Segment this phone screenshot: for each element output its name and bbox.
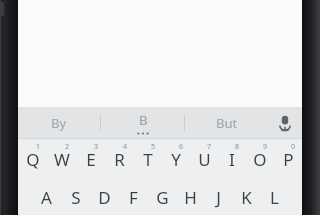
staticText: P: [283, 148, 294, 171]
button[interactable]: H: [176, 179, 204, 215]
button[interactable]: Voice input: [268, 107, 302, 139]
button[interactable]: R: [105, 139, 134, 179]
staticText: But: [216, 114, 238, 132]
button[interactable]: U: [190, 139, 218, 179]
button[interactable]: Q: [18, 139, 47, 179]
button[interactable]: B: [101, 107, 184, 139]
staticText: 8: [235, 142, 240, 152]
staticText: 9: [263, 142, 268, 152]
staticText: S: [71, 186, 81, 209]
staticText: 5: [151, 142, 156, 152]
button[interactable]: S: [61, 179, 90, 215]
staticText: I: [229, 148, 235, 171]
staticText: L: [270, 186, 279, 209]
staticText: 4: [123, 142, 128, 152]
staticText: E: [86, 148, 96, 171]
staticText: K: [241, 186, 252, 209]
button[interactable]: F: [119, 179, 148, 215]
staticText: 3: [94, 142, 99, 152]
button[interactable]: I: [218, 139, 246, 179]
staticText: O: [253, 148, 267, 171]
staticText: 0: [291, 142, 296, 152]
staticText: U: [198, 148, 211, 171]
staticText: H: [184, 186, 197, 209]
staticText: By: [51, 114, 67, 132]
button[interactable]: Y: [162, 139, 190, 179]
button[interactable]: J: [204, 179, 232, 215]
button[interactable]: E: [76, 139, 105, 179]
button[interactable]: W: [47, 139, 76, 179]
staticText: A: [41, 186, 52, 209]
staticText: F: [129, 186, 138, 209]
button[interactable]: But: [185, 107, 268, 139]
button[interactable]: K: [232, 179, 260, 215]
button[interactable]: D: [90, 179, 119, 215]
staticText: T: [143, 148, 153, 171]
staticText: G: [156, 186, 169, 209]
staticText: B: [139, 111, 148, 129]
staticText: J: [216, 186, 221, 209]
button[interactable]: O: [246, 139, 274, 179]
button[interactable]: A: [32, 179, 61, 215]
staticText: Q: [26, 148, 40, 171]
staticText: Y: [171, 148, 181, 171]
staticText: 6: [179, 142, 184, 152]
staticText: 7: [207, 142, 212, 152]
button[interactable]: T: [134, 139, 162, 179]
button[interactable]: L: [260, 179, 288, 215]
button[interactable]: By: [18, 107, 100, 139]
staticText: 1: [36, 142, 41, 152]
staticText: W: [54, 148, 70, 171]
button[interactable]: P: [274, 139, 302, 179]
staticText: R: [114, 148, 125, 171]
staticText: 2: [65, 142, 70, 152]
staticText: D: [98, 186, 111, 209]
button[interactable]: G: [148, 179, 176, 215]
